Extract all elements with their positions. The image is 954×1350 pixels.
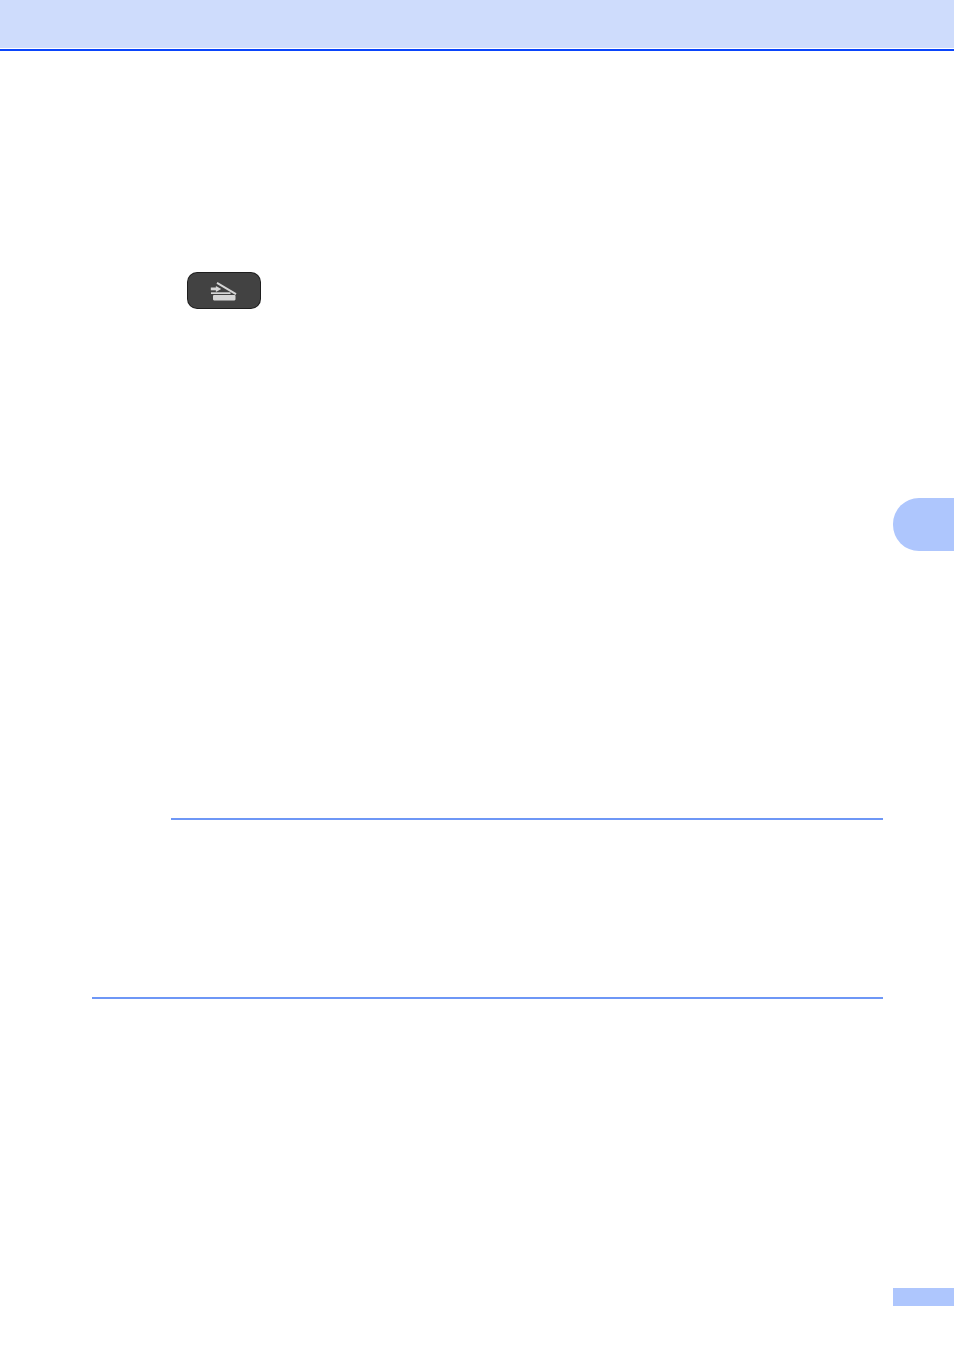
button[interactable]: Chapter tab [893, 498, 954, 551]
button[interactable]: Scan [188, 273, 260, 308]
